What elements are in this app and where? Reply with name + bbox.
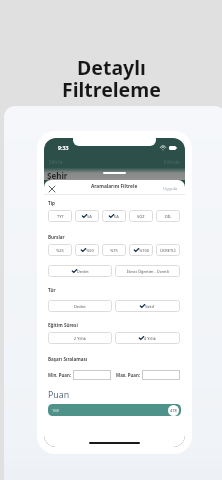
staticText: Max. Puan: [116, 372, 140, 378]
staticText: Filtreleme [62, 76, 161, 103]
staticText: Aramalarını Filtrele [91, 183, 138, 190]
staticText: Sıfırla [49, 159, 63, 166]
button[interactable]: 2 Yıllık [48, 332, 112, 344]
staticText: SA [87, 214, 92, 219]
staticText: 478 [170, 408, 177, 413]
button[interactable]: Kapat [46, 183, 57, 194]
staticText: Filtrele [164, 159, 180, 166]
staticText: Vakıf [145, 304, 155, 309]
staticText: %50 [86, 248, 94, 253]
staticText: 168 [52, 408, 59, 413]
staticText: Detaylı [77, 54, 146, 81]
button[interactable]: 168 [48, 404, 181, 416]
button[interactable]: EA [102, 210, 126, 222]
button[interactable]: Sıfırla [49, 159, 63, 166]
staticText: Min. Puan: [48, 372, 71, 378]
staticText: EA [114, 214, 119, 219]
staticText: %25 [56, 248, 64, 253]
staticText: %100 [139, 248, 149, 253]
button[interactable]: Filtrele [164, 159, 180, 166]
button[interactable]: TYT [48, 210, 72, 222]
button[interactable]: 4 Yıllık [115, 332, 180, 344]
button[interactable]: %100 [129, 244, 153, 256]
button[interactable]: Vakıf [115, 300, 180, 312]
staticText: 2 Yıllık [74, 336, 86, 341]
button[interactable]: İkinci Öğretim - Ücretli [115, 265, 180, 277]
staticText: Devlet [77, 269, 89, 274]
button[interactable] [73, 370, 111, 380]
staticText: TYT [57, 214, 64, 219]
button[interactable]: Devlet [48, 300, 112, 312]
button[interactable]: %25 [48, 244, 72, 256]
button[interactable]: Uygula [163, 185, 178, 191]
button[interactable]: SA [75, 210, 99, 222]
button[interactable]: DİL [156, 210, 180, 222]
button[interactable] [142, 370, 180, 380]
staticText: İkinci Öğretim - Ücretli [127, 269, 169, 274]
staticText: Tür [48, 287, 56, 293]
staticText: %75 [110, 248, 118, 253]
staticText: Puan [48, 389, 70, 401]
button[interactable]: 478 [168, 405, 179, 416]
staticText: 4 Yıllık [144, 336, 156, 341]
staticText: Başarı Sıralaması [48, 356, 88, 362]
staticText: Şehir [47, 170, 68, 181]
staticText: Burslar [48, 234, 65, 240]
staticText: 9:33 [58, 144, 69, 151]
staticText: SÖZ [137, 214, 145, 219]
button[interactable]: Devlet [48, 265, 112, 277]
staticText: Eğitim Süresi [48, 322, 78, 328]
staticText: Tip [48, 200, 55, 206]
button[interactable]: %50 [75, 244, 99, 256]
staticText: Uygula [163, 185, 178, 191]
button[interactable]: SÖZ [129, 210, 153, 222]
button[interactable]: %75 [102, 244, 126, 256]
staticText: ÜCRETLİ [160, 248, 176, 253]
button[interactable]: ÜCRETLİ [156, 244, 180, 256]
staticText: DİL [165, 214, 172, 219]
staticText: Devlet [74, 304, 86, 309]
